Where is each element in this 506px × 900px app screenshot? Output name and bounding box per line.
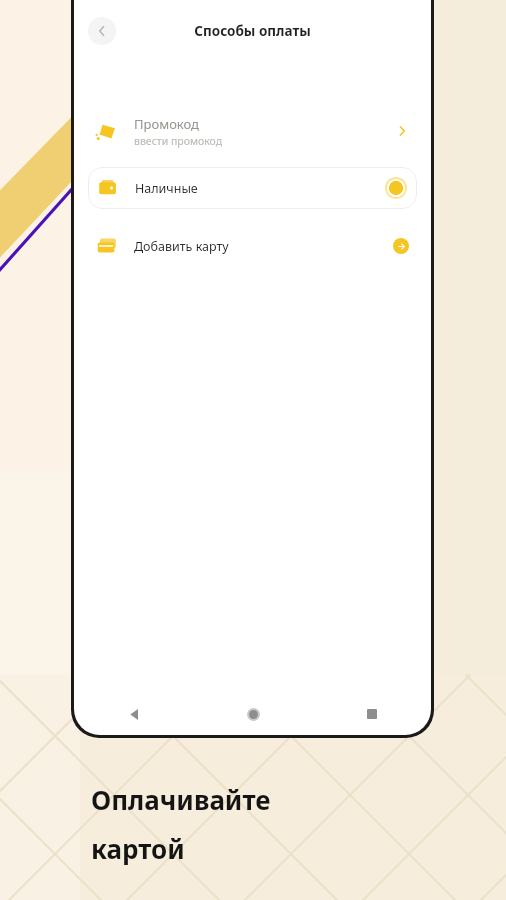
button[interactable]: Промокод: [74, 105, 431, 157]
button[interactable]: Добавить карту: [74, 223, 431, 269]
button[interactable]: Recents: [359, 701, 385, 727]
button[interactable]: Наличные: [88, 167, 417, 209]
button[interactable]: Добавить: [393, 238, 409, 254]
staticText: Добавить карту: [134, 238, 393, 255]
button[interactable]: Назад: [88, 17, 116, 45]
staticText: Оплачивайте: [91, 782, 271, 817]
staticText: картой: [91, 831, 185, 866]
staticText: Способы оплаты: [194, 22, 311, 40]
staticText: Наличные: [135, 180, 384, 197]
staticText: ввести промокод: [134, 134, 223, 148]
staticText: Промокод: [134, 115, 199, 133]
button[interactable]: Home: [240, 701, 266, 727]
button[interactable]: Back: [121, 701, 147, 727]
